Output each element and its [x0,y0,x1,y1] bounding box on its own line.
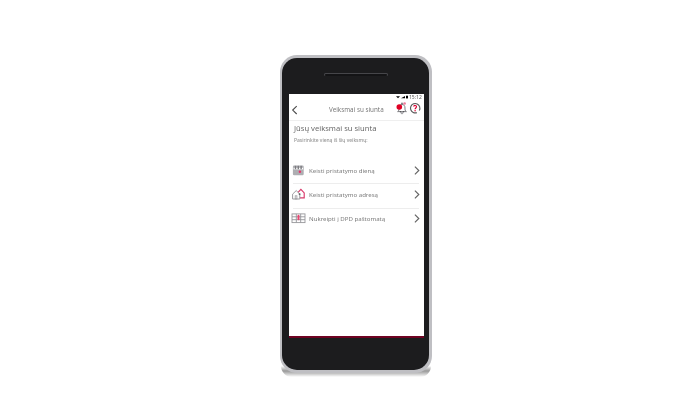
button[interactable]: Nukreipti į DPD paštomatą [289,207,424,229]
staticText: Jūsų veiksmai su siunta [294,123,377,133]
button[interactable]: Notifications [395,102,408,115]
staticText: Nukreipti į DPD paštomatą [309,214,386,222]
button[interactable]: Help [409,102,421,114]
staticText: Keisti pristatymo adresą [309,190,379,198]
button[interactable]: Keisti pristatymo dieną [289,159,424,181]
staticText: 15:12 [409,94,422,100]
staticText: Keisti pristatymo dieną [309,166,375,174]
staticText: Veiksmai su siunta [329,105,384,114]
staticText: Pasirinkite vieną iš šių veiksmų: [294,137,368,144]
button[interactable]: Keisti pristatymo adresą [289,183,424,205]
button[interactable]: Back [289,104,301,116]
